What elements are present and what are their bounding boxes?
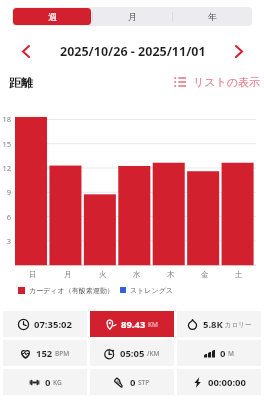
staticText: 月: [128, 11, 137, 22]
button[interactable]: 00:00:00: [177, 369, 261, 395]
staticText: 6: [6, 212, 11, 222]
staticText: 05:05: [120, 347, 145, 360]
button[interactable]: 月: [93, 8, 171, 25]
staticText: カーディオ（有酸素運動）: [29, 286, 114, 295]
button[interactable]: リストの表示: [174, 71, 261, 93]
staticText: KG: [53, 378, 62, 387]
staticText: 木: [167, 270, 175, 279]
staticText: 週: [48, 11, 57, 22]
staticText: 5.8K: [203, 318, 223, 331]
button[interactable]: 年: [173, 8, 251, 25]
staticText: M: [228, 349, 234, 358]
staticText: 月: [64, 270, 72, 279]
button[interactable]: 89.43: [90, 311, 174, 337]
staticText: 0: [130, 376, 136, 389]
staticText: /KM: [147, 349, 160, 358]
button[interactable]: Previous week: [14, 40, 37, 63]
staticText: 07:35:02: [34, 318, 72, 331]
staticText: ストレングス: [130, 286, 173, 295]
staticText: 0: [220, 347, 226, 360]
staticText: 00:00:00: [208, 376, 246, 389]
button[interactable]: Next week: [227, 40, 250, 63]
staticText: 2025/10/26 - 2025/11/01: [60, 43, 206, 60]
staticText: リストの表示: [193, 75, 261, 89]
staticText: 火: [99, 270, 107, 279]
staticText: 日: [29, 270, 37, 279]
staticText: 距離: [9, 75, 33, 90]
staticText: 89.43: [121, 318, 146, 331]
button[interactable]: 07:35:02: [3, 311, 87, 337]
staticText: 年: [208, 11, 217, 22]
staticText: 12: [2, 163, 11, 173]
staticText: BPM: [55, 349, 70, 358]
button[interactable]: 0: [3, 369, 87, 395]
button[interactable]: 0: [90, 369, 174, 395]
staticText: STP: [138, 378, 150, 387]
staticText: 15: [2, 139, 11, 149]
button[interactable]: 05:05: [90, 340, 174, 366]
button[interactable]: 0: [177, 340, 261, 366]
button[interactable]: 152: [3, 340, 87, 366]
staticText: 金: [201, 270, 209, 279]
staticText: 3: [6, 236, 11, 246]
staticText: 水: [133, 270, 141, 279]
staticText: 土: [235, 270, 243, 279]
staticText: カロリー: [225, 321, 252, 329]
button[interactable]: 5.8K: [177, 311, 261, 337]
staticText: 18: [2, 114, 11, 124]
button[interactable]: 週: [13, 8, 91, 25]
staticText: 152: [36, 347, 53, 360]
staticText: KM: [148, 320, 159, 329]
staticText: 9: [6, 187, 11, 197]
staticText: 0: [45, 376, 51, 389]
